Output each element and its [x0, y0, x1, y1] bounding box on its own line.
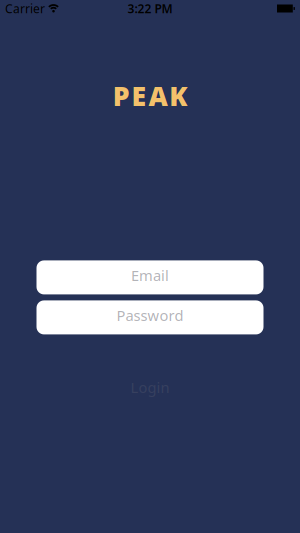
staticText: 3:22 PM [127, 0, 172, 16]
staticText: Carrier [5, 0, 45, 16]
staticText: Login [130, 378, 169, 397]
staticText: Password [116, 306, 183, 325]
staticText: PEAK [113, 78, 187, 113]
staticText: Email [131, 266, 169, 285]
button[interactable]: Password [36, 300, 263, 334]
button[interactable]: Email [36, 260, 263, 294]
button[interactable]: Login [90, 378, 210, 396]
